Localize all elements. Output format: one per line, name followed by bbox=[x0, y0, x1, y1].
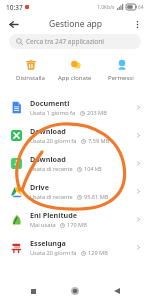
button[interactable]: App clonate bbox=[53, 55, 97, 84]
staticText: 203 MB bbox=[87, 109, 107, 117]
staticText: 95,61 MB bbox=[84, 193, 109, 201]
staticText: 104 kB bbox=[84, 165, 102, 173]
staticText: Drive bbox=[30, 182, 50, 192]
button[interactable]: Drive bbox=[0, 177, 150, 205]
button[interactable]: Esselunga bbox=[0, 233, 150, 261]
staticText: Usata 20 giorni fa bbox=[30, 137, 77, 145]
staticText: 7,59 MB bbox=[88, 137, 110, 145]
staticText: Permessi bbox=[108, 74, 134, 82]
staticText: 1.0Kb/s bbox=[97, 4, 115, 11]
staticText: Eni Plenitude bbox=[30, 210, 78, 220]
staticText: Usata di recente bbox=[30, 165, 73, 173]
staticText: Download bbox=[30, 126, 66, 136]
button[interactable]: Recents bbox=[24, 282, 42, 300]
staticText: Usata 1 giorno fa bbox=[30, 109, 76, 117]
staticText: Mai usata bbox=[30, 221, 56, 229]
staticText: 64 bbox=[138, 4, 144, 11]
button[interactable]: Disinstalla bbox=[8, 55, 52, 84]
staticText: Documenti bbox=[30, 98, 70, 108]
staticText: 170 MB bbox=[67, 221, 87, 229]
staticText: Esselunga bbox=[30, 238, 66, 248]
staticText: Disinstalla bbox=[16, 74, 45, 82]
button[interactable]: Eni Plenitude bbox=[0, 205, 150, 233]
button[interactable]: Cerca tra 247 applicazioni bbox=[9, 34, 141, 49]
button[interactable]: Back bbox=[108, 282, 126, 300]
staticText: Download bbox=[30, 154, 66, 164]
staticText: 10:37 bbox=[6, 3, 23, 12]
staticText: Cerca tra 247 applicazioni bbox=[26, 37, 104, 46]
button[interactable]: More options bbox=[129, 16, 145, 32]
staticText: Usata 20 giorni fa bbox=[30, 249, 77, 257]
staticText: Usata di recente bbox=[30, 193, 73, 201]
button[interactable]: Back bbox=[5, 16, 21, 32]
button[interactable]: Home bbox=[66, 282, 84, 300]
button[interactable]: Download bbox=[0, 121, 150, 149]
staticText: 129 MB bbox=[88, 249, 108, 257]
button[interactable]: Documenti bbox=[0, 93, 150, 121]
staticText: Gestione app bbox=[49, 18, 102, 30]
staticText: App clonate bbox=[58, 74, 92, 82]
button[interactable]: Permessi bbox=[99, 55, 143, 84]
button[interactable]: Download bbox=[0, 149, 150, 177]
